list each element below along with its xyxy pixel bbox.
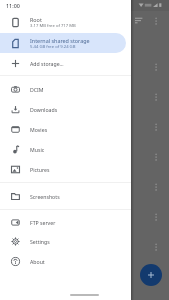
staticText: 3.17 MB free of 717 MB [30,23,76,29]
staticText: FTP server [30,219,56,226]
button[interactable]: Movies [0,119,131,139]
button[interactable]: Internal shared storage [0,33,131,53]
button[interactable]: DCIM [0,79,131,99]
button[interactable]: Add [140,264,162,286]
button[interactable]: Item options [152,180,165,193]
button[interactable]: About [0,251,131,271]
button[interactable]: Downloads [0,99,131,119]
staticText: Pictures [30,166,50,173]
button[interactable]: Item options [152,240,165,253]
button[interactable]: Screenshots [0,186,131,206]
button[interactable]: Pictures [0,159,131,179]
staticText: Movies [30,126,48,133]
staticText: Downloads [30,106,58,113]
staticText: 11:00 [6,2,20,9]
button[interactable]: Item options [152,90,165,103]
staticText: Settings [30,238,50,245]
button[interactable]: Settings [0,231,131,251]
button[interactable]: Item options [152,120,165,133]
button[interactable]: Sort [130,13,145,28]
staticText: Music [30,146,45,153]
staticText: Root [30,16,42,23]
button[interactable]: Root [0,12,131,32]
button[interactable]: Item options [152,150,165,163]
staticText: DCIM [30,86,44,93]
staticText: About [30,258,45,265]
staticText: Screenshots [30,193,60,200]
button[interactable]: Music [0,139,131,159]
staticText: Internal shared storage [30,37,90,44]
button[interactable]: More options [152,14,165,27]
button[interactable]: Item options [152,60,165,73]
staticText: Add storage… [30,60,64,67]
button[interactable]: Item options [152,210,165,223]
staticText: 5.44 GB free of 9.24 GB [30,44,76,50]
button[interactable]: Add storage… [0,53,131,73]
button[interactable]: FTP server [0,212,131,232]
